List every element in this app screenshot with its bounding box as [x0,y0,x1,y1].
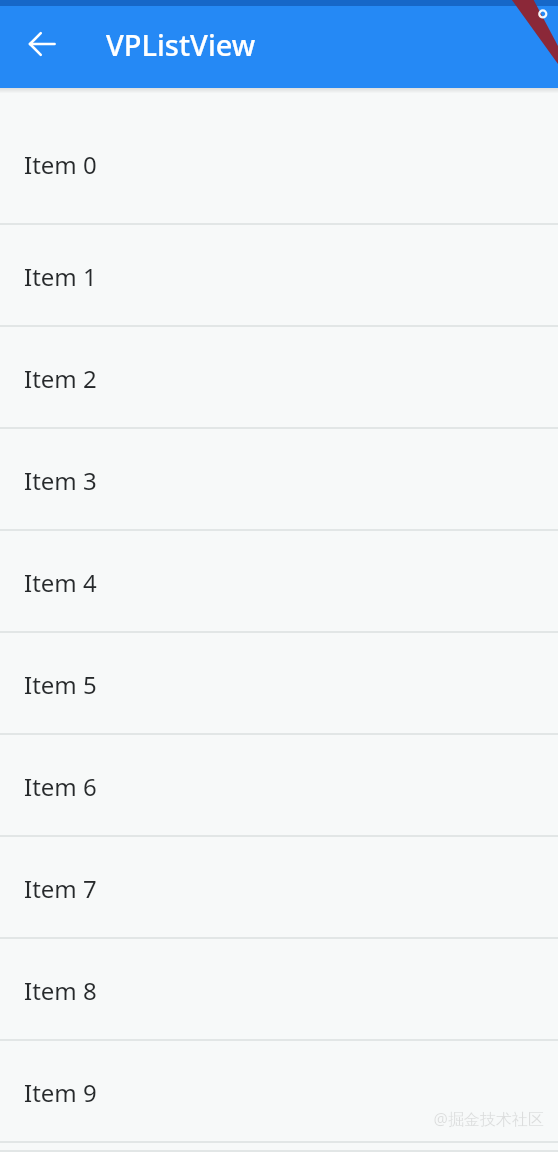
staticText: Item 5 [24,668,97,701]
staticText: Item 9 [24,1076,97,1109]
button[interactable]: Item 8 [0,939,558,1041]
button[interactable]: Item 6 [0,735,558,837]
button[interactable]: Item 0 [0,93,558,225]
button[interactable]: Item 3 [0,429,558,531]
staticText: Item 0 [24,148,97,181]
button[interactable]: Item 1 [0,225,558,327]
staticText: Item 7 [24,872,97,905]
button[interactable]: Item 2 [0,327,558,429]
button[interactable]: Item 7 [0,837,558,939]
staticText: Item 8 [24,974,97,1007]
button[interactable]: Back [18,20,66,68]
staticText: Item 10 [24,1143,111,1152]
button[interactable]: Item 10 [0,1143,558,1152]
staticText: Item 6 [24,770,97,803]
staticText: Item 4 [24,566,97,599]
staticText: VPListView [106,25,256,64]
staticText: @掘金技术社区 [433,1108,544,1130]
button[interactable]: Item 5 [0,633,558,735]
button[interactable]: Item 4 [0,531,558,633]
staticText: Item 2 [24,362,97,395]
button[interactable]: Item 9 [0,1041,558,1143]
staticText: Item 1 [24,260,97,293]
staticText: Item 3 [24,464,97,497]
